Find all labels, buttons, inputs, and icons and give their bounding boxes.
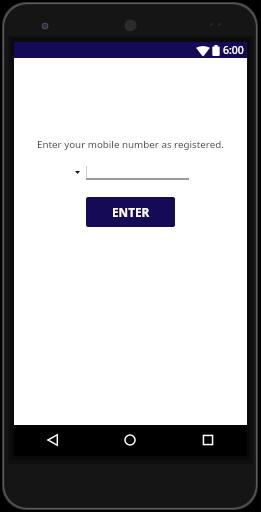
button[interactable]: Back [42, 428, 64, 452]
staticText: ENTER [112, 204, 150, 220]
button[interactable]: ENTER [86, 197, 175, 227]
button[interactable]: Mobile number [86, 164, 189, 180]
button[interactable]: Home [119, 428, 141, 452]
button[interactable]: Recent apps [197, 428, 219, 452]
button[interactable]: Country code [67, 160, 87, 184]
staticText: Enter your mobile number as registered. [37, 138, 224, 151]
staticText: 6:00 [223, 43, 244, 57]
